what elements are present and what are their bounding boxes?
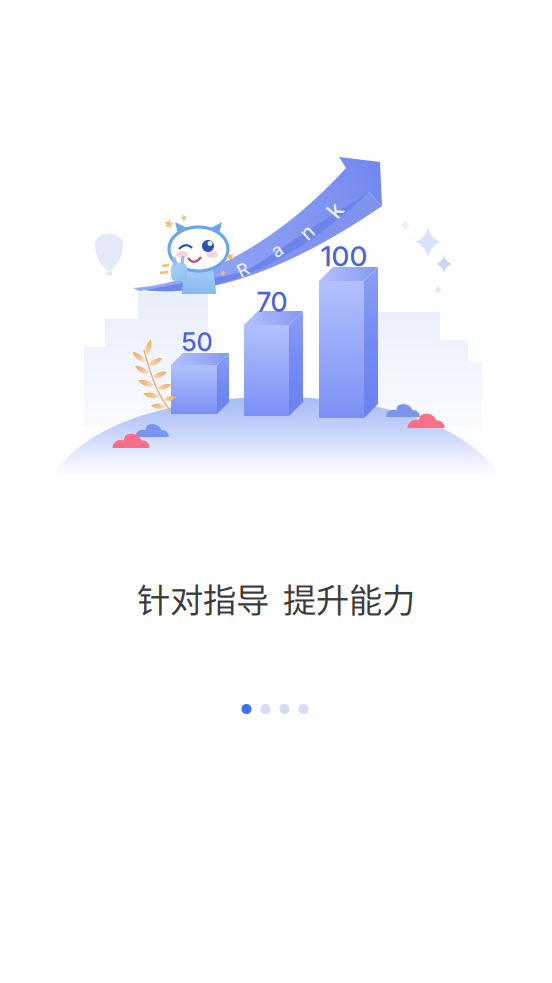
- staticText: n: [301, 220, 313, 244]
- staticText: R: [237, 259, 248, 280]
- staticText: 100: [320, 239, 367, 273]
- staticText: 50: [181, 327, 212, 357]
- staticText: 针对指导 提升能力: [137, 574, 415, 622]
- staticText: k: [328, 196, 341, 224]
- staticText: 70: [256, 286, 287, 318]
- staticText: a: [271, 239, 282, 261]
